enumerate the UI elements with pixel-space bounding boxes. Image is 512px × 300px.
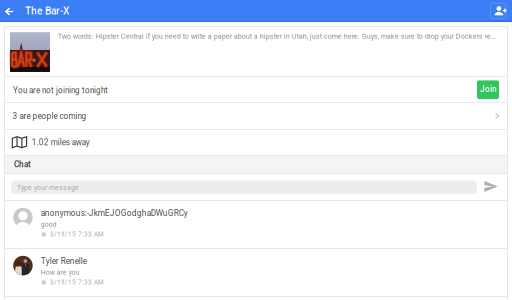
button[interactable]: 3 are people coming [4,103,508,129]
staticText: 3/19/15 7:33 AM [50,231,104,238]
staticText: How are you [41,269,80,276]
button[interactable]: Send [480,175,502,197]
staticText: Type your message [17,184,79,192]
staticText: anonymous:-JkmEJOGodghaDWuGRCy [41,208,188,218]
staticText: Two words: Hipster Central If you need t… [58,32,498,40]
staticText: 3 are people coming [13,111,87,121]
staticText: You are not joining tonight [13,86,108,95]
staticText: Chat [14,160,31,169]
staticText: Join [480,84,497,94]
staticText: good [41,221,57,228]
staticText: Tyler Renelle [41,256,87,266]
button[interactable]: 1.02 miles away [4,130,508,155]
button[interactable]: Back [0,0,22,21]
button[interactable]: Add people [491,3,506,18]
staticText: 1.02 miles away [32,138,90,147]
staticText: The Bar-X [25,5,69,17]
staticText: 3/19/15 7:33 AM [50,279,104,286]
button[interactable]: Join [477,80,499,99]
